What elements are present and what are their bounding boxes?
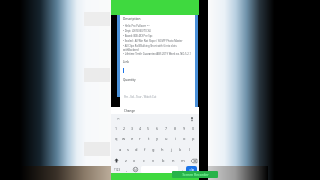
staticText: 4 [139,126,142,131]
staticText: h [161,147,164,152]
staticText: i [175,136,177,141]
button[interactable]: Period [179,166,186,173]
staticText: f [144,147,146,152]
button[interactable]: s [124,144,132,155]
staticText: • Dept: 4X/5X/6X/7X XL( [123,29,152,33]
button[interactable]: Shift [111,155,121,166]
staticText: m [181,158,185,163]
staticText: . [182,167,184,172]
button[interactable]: a [116,144,124,155]
button[interactable]: x [130,155,139,166]
button[interactable]: 2 [120,123,128,133]
button[interactable]: m [178,155,188,166]
staticText: d [135,147,138,152]
button[interactable]: j [167,144,176,155]
staticText: v [152,158,155,163]
staticText: a [119,147,122,152]
staticText: k [179,147,182,152]
staticText: b [162,158,165,163]
button[interactable]: p [189,133,198,144]
button[interactable]: Voice input [188,115,195,122]
staticText: z [125,158,127,163]
staticText: t [148,136,150,141]
button[interactable]: t [144,133,153,144]
button[interactable]: w [120,133,128,144]
staticText: c [143,158,145,163]
button[interactable]: i [171,133,180,144]
staticText: n [172,158,175,163]
staticText: q [115,136,118,141]
staticText: , [126,167,128,172]
staticText: Screen Recorder [182,172,209,177]
staticText: • Sealed : All Win Not Slope / 60 MP Pho… [123,39,183,43]
button[interactable]: q [112,133,120,144]
button[interactable]: c [139,155,148,166]
staticText: 9 [183,126,186,131]
staticText: 0 [192,126,195,131]
button[interactable]: 8 [171,123,180,133]
button[interactable]: Comma [123,166,131,173]
staticText: u [165,136,168,141]
button[interactable]: 9 [180,123,189,133]
button[interactable]: Symbols [111,166,123,173]
staticText: 5 [147,126,150,131]
button[interactable]: f [140,144,149,155]
staticText: y [156,136,159,141]
staticText: Pre - Sol - Tour - Watch Cut [124,95,157,99]
button[interactable]: 4 [136,123,144,133]
button[interactable]: 5 [144,123,153,133]
staticText: ?123 [114,168,121,172]
button[interactable]: Enter [186,166,197,173]
staticText: • All Clips Roll/Bulking Short with 6 in… [123,44,192,51]
staticText: • Helix Pro Pullover • • [123,24,150,28]
button[interactable]: d [132,144,140,155]
staticText: Link [123,60,129,64]
button[interactable]: Backspace [188,155,199,166]
button[interactable]: 7 [162,123,171,133]
button[interactable]: y [153,133,162,144]
staticText: • Lifetime Tenth Guarantee/ABS 2019 Week… [123,52,191,56]
staticText: s [127,147,129,152]
staticText: p [192,136,195,141]
staticText: r [139,136,141,141]
staticText: x [133,158,136,163]
button[interactable]: g [149,144,158,155]
button[interactable]: k [176,144,185,155]
button[interactable]: r [136,133,144,144]
button[interactable]: n [168,155,178,166]
button[interactable]: 1 [112,123,120,133]
staticText: w [122,136,126,141]
staticText: Description [123,17,141,21]
staticText: g [152,147,155,152]
staticText: Quantity [123,78,136,82]
button[interactable]: Clipboard [115,116,121,122]
staticText: 8 [174,126,177,131]
button[interactable]: u [162,133,171,144]
button[interactable]: Recorder watermark [172,171,218,178]
button[interactable]: v [148,155,158,166]
staticText: j [171,147,173,152]
button[interactable]: o [180,133,189,144]
button[interactable]: 0 [189,123,198,133]
staticText: 2 [123,126,126,131]
button[interactable]: 6 [153,123,162,133]
staticText: 1 [115,126,118,131]
button[interactable]: e [128,133,136,144]
button[interactable]: b [158,155,168,166]
button[interactable]: Emoji [131,166,140,173]
button[interactable]: h [158,144,167,155]
staticText: 7 [165,126,168,131]
button[interactable]: z [121,155,130,166]
staticText: 6 [156,126,159,131]
staticText: l [189,147,191,152]
staticText: ✂ [117,117,120,121]
staticText: Change [124,109,135,113]
staticText: e [131,136,134,141]
button[interactable]: l [185,144,194,155]
button[interactable]: 3 [128,123,136,133]
staticText: o [183,136,186,141]
staticText: • Based: BIB 4XX Pre Spc [123,34,153,38]
button[interactable]: Space [141,166,178,173]
staticText: 3 [131,126,134,131]
